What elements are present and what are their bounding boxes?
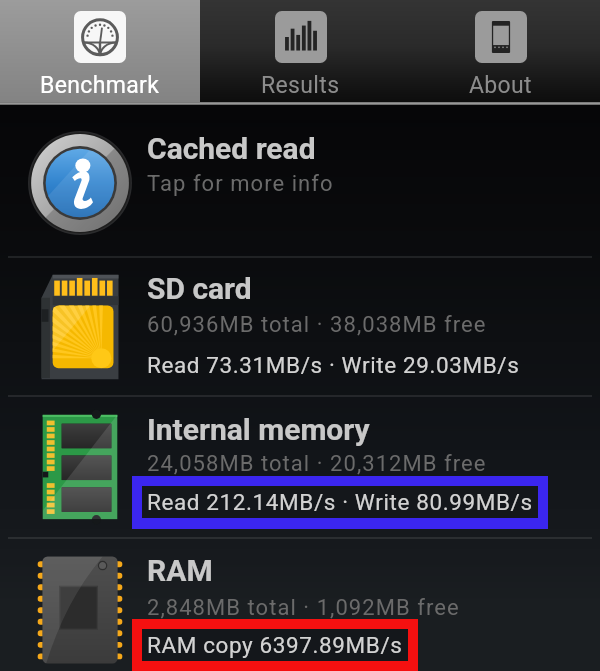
staticText: 2,848MB total · 1,092MB free — [147, 595, 460, 621]
staticText: Read 212.14MB/s · Write 80.99MB/s — [147, 489, 533, 515]
button[interactable]: Results — [200, 0, 400, 102]
staticText: Cached read — [147, 131, 316, 166]
staticText: About — [469, 72, 532, 99]
button[interactable]: RAM — [0, 539, 600, 671]
staticText: Internal memory — [147, 412, 370, 447]
button[interactable]: About — [400, 0, 600, 102]
staticText: SD card — [147, 271, 252, 306]
button[interactable]: Internal memory — [0, 397, 600, 537]
button[interactable]: SD card — [0, 258, 600, 395]
staticText: RAM copy 6397.89MB/s — [147, 632, 403, 658]
staticText: Benchmark — [40, 72, 160, 99]
staticText: Read 73.31MB/s · Write 29.03MB/s — [147, 352, 520, 378]
staticText: Results — [261, 72, 340, 99]
button[interactable]: Cached read — [0, 105, 600, 256]
staticText: 24,058MB total · 20,312MB free — [147, 451, 487, 477]
staticText: 60,936MB total · 38,038MB free — [147, 312, 487, 338]
button[interactable]: Benchmark — [0, 0, 200, 102]
staticText: Tap for more info — [147, 171, 334, 197]
staticText: RAM — [147, 553, 213, 588]
